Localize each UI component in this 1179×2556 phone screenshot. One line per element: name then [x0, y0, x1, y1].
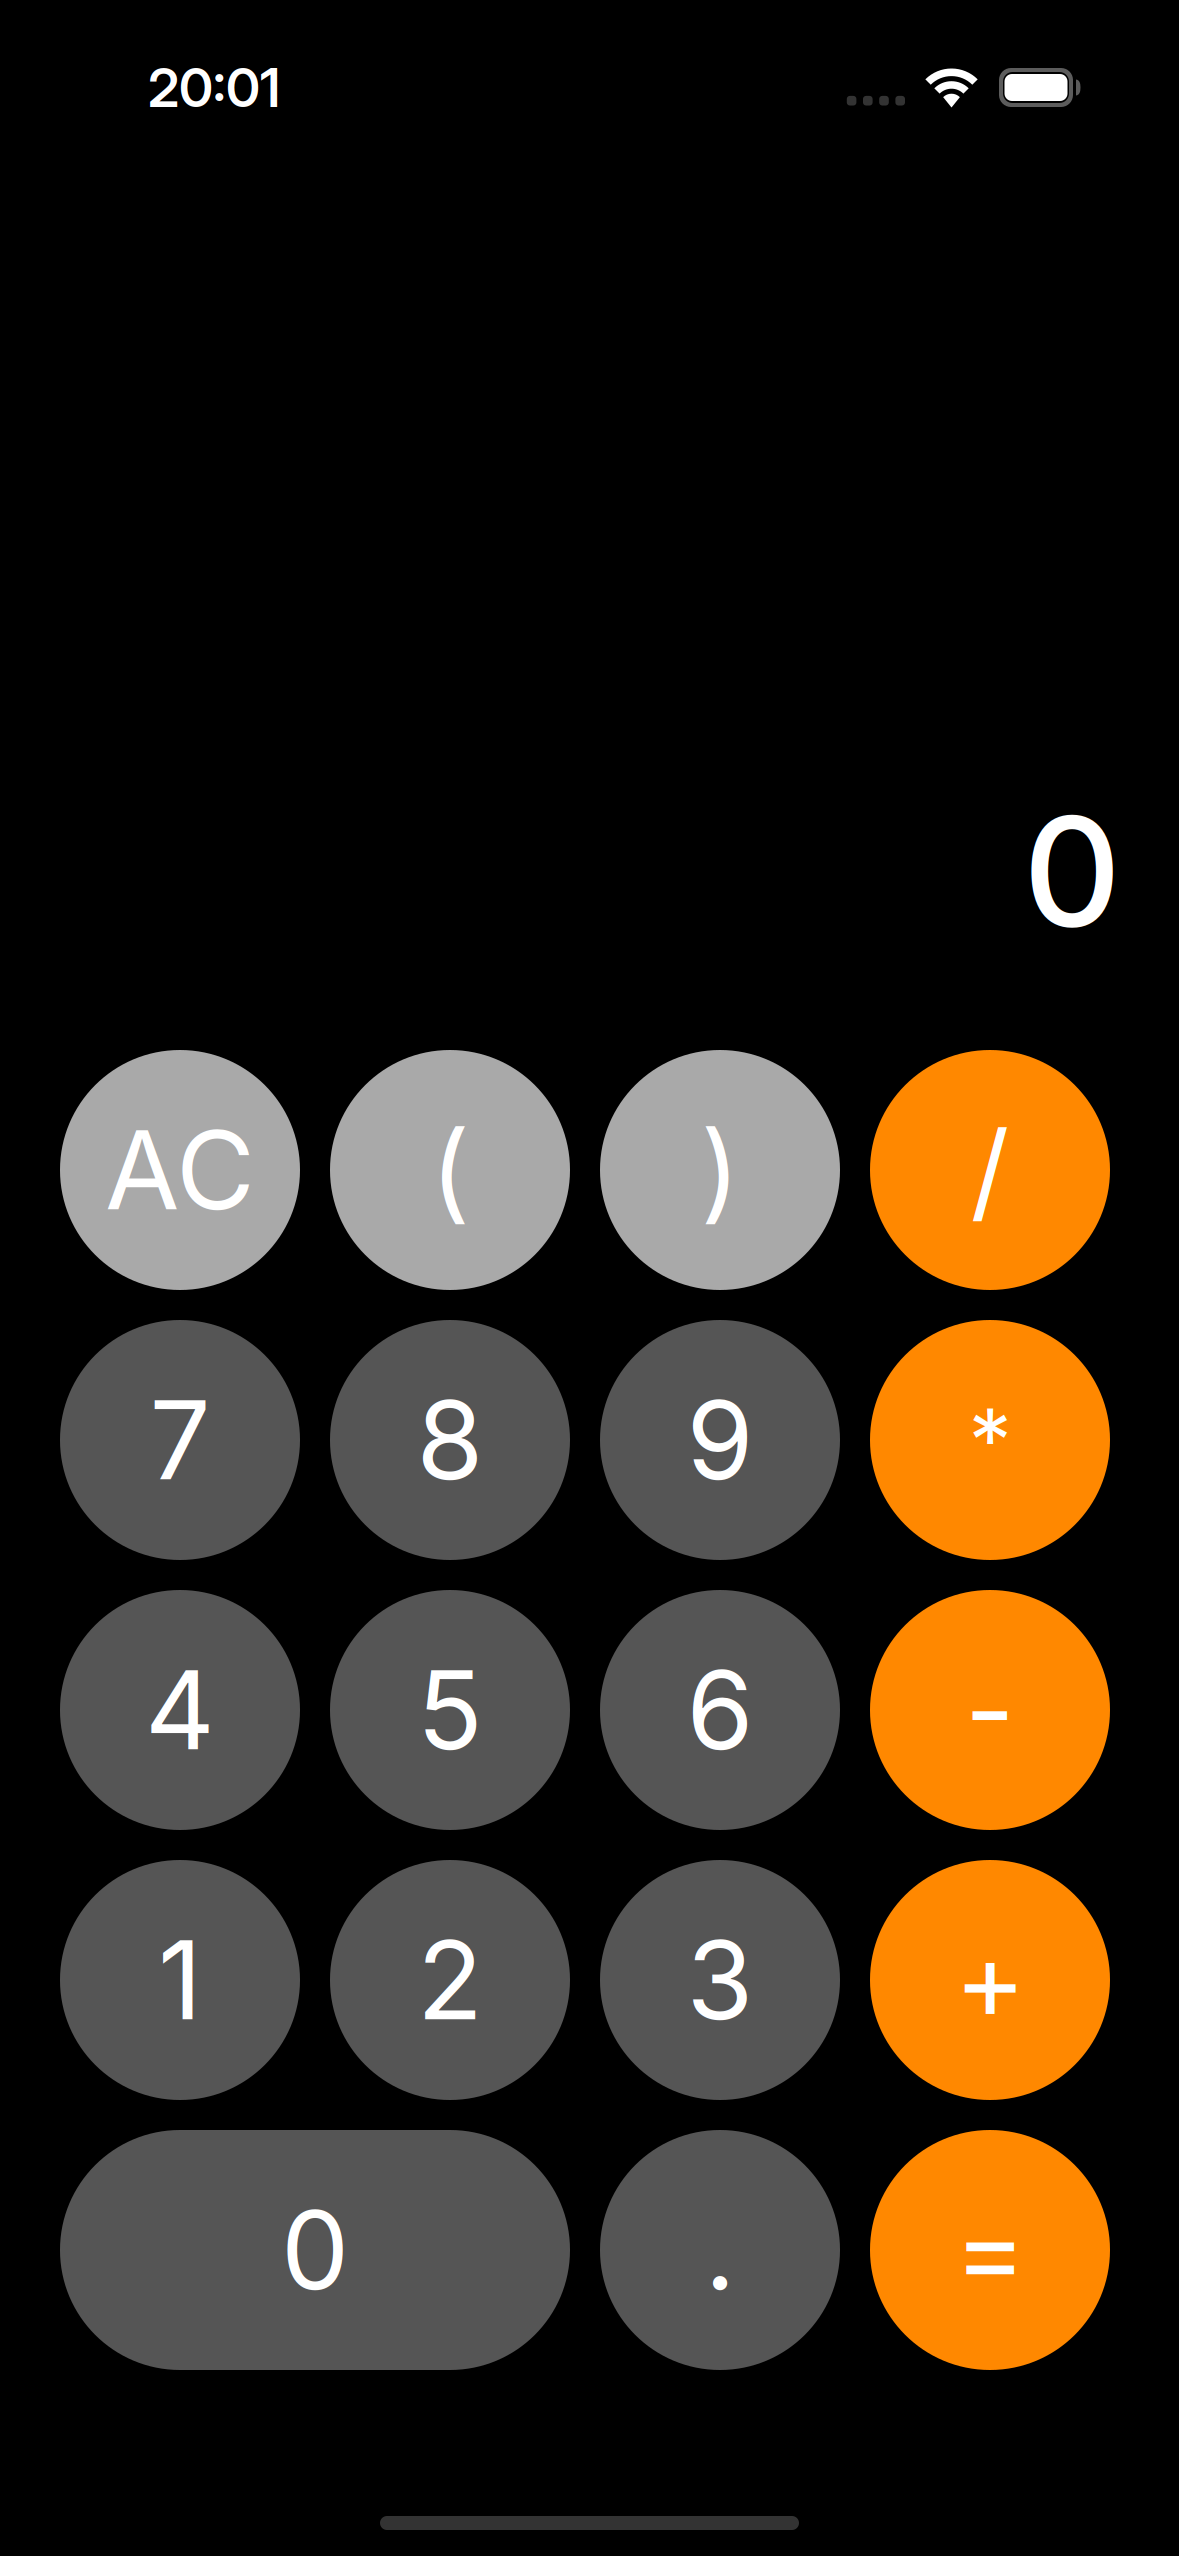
staticText: 6: [686, 1645, 753, 1775]
staticText: =: [954, 2185, 1025, 2315]
button[interactable]: Divide: [870, 1050, 1110, 1290]
staticText: +: [954, 1915, 1025, 2045]
staticText: -: [965, 1645, 1015, 1775]
staticText: 20:01: [148, 55, 280, 120]
staticText: ): [700, 1105, 739, 1235]
button[interactable]: 8: [330, 1320, 570, 1560]
button[interactable]: 5: [330, 1590, 570, 1830]
button[interactable]: All clear: [60, 1050, 300, 1290]
staticText: .: [704, 2185, 735, 2315]
staticText: 0: [1023, 779, 1121, 963]
button[interactable]: Decimal point: [600, 2130, 840, 2370]
button[interactable]: Close parenthesis: [600, 1050, 840, 1290]
button[interactable]: 1: [60, 1860, 300, 2100]
button[interactable]: Plus: [870, 1860, 1110, 2100]
button[interactable]: 2: [330, 1860, 570, 2100]
staticText: 7: [149, 1375, 210, 1505]
button[interactable]: Equals: [870, 2130, 1110, 2370]
button[interactable]: Minus: [870, 1590, 1110, 1830]
button[interactable]: 6: [600, 1590, 840, 1830]
staticText: 0: [281, 2185, 349, 2315]
button[interactable]: Open parenthesis: [330, 1050, 570, 1290]
staticText: 3: [686, 1915, 753, 2045]
staticText: 8: [416, 1375, 483, 1505]
staticText: 4: [145, 1645, 215, 1775]
staticText: 2: [417, 1915, 483, 2045]
button[interactable]: 9: [600, 1320, 840, 1560]
button[interactable]: 4: [60, 1590, 300, 1830]
button[interactable]: 0: [60, 2130, 570, 2370]
staticText: 1: [158, 1915, 202, 2045]
button[interactable]: 7: [60, 1320, 300, 1560]
button[interactable]: 3: [600, 1860, 840, 2100]
staticText: AC: [105, 1105, 255, 1235]
button[interactable]: Multiply: [870, 1320, 1110, 1560]
staticText: /: [970, 1105, 1009, 1235]
staticText: 5: [417, 1645, 483, 1775]
staticText: 9: [686, 1375, 753, 1505]
staticText: (: [430, 1105, 469, 1235]
staticText: *: [968, 1388, 1011, 1492]
